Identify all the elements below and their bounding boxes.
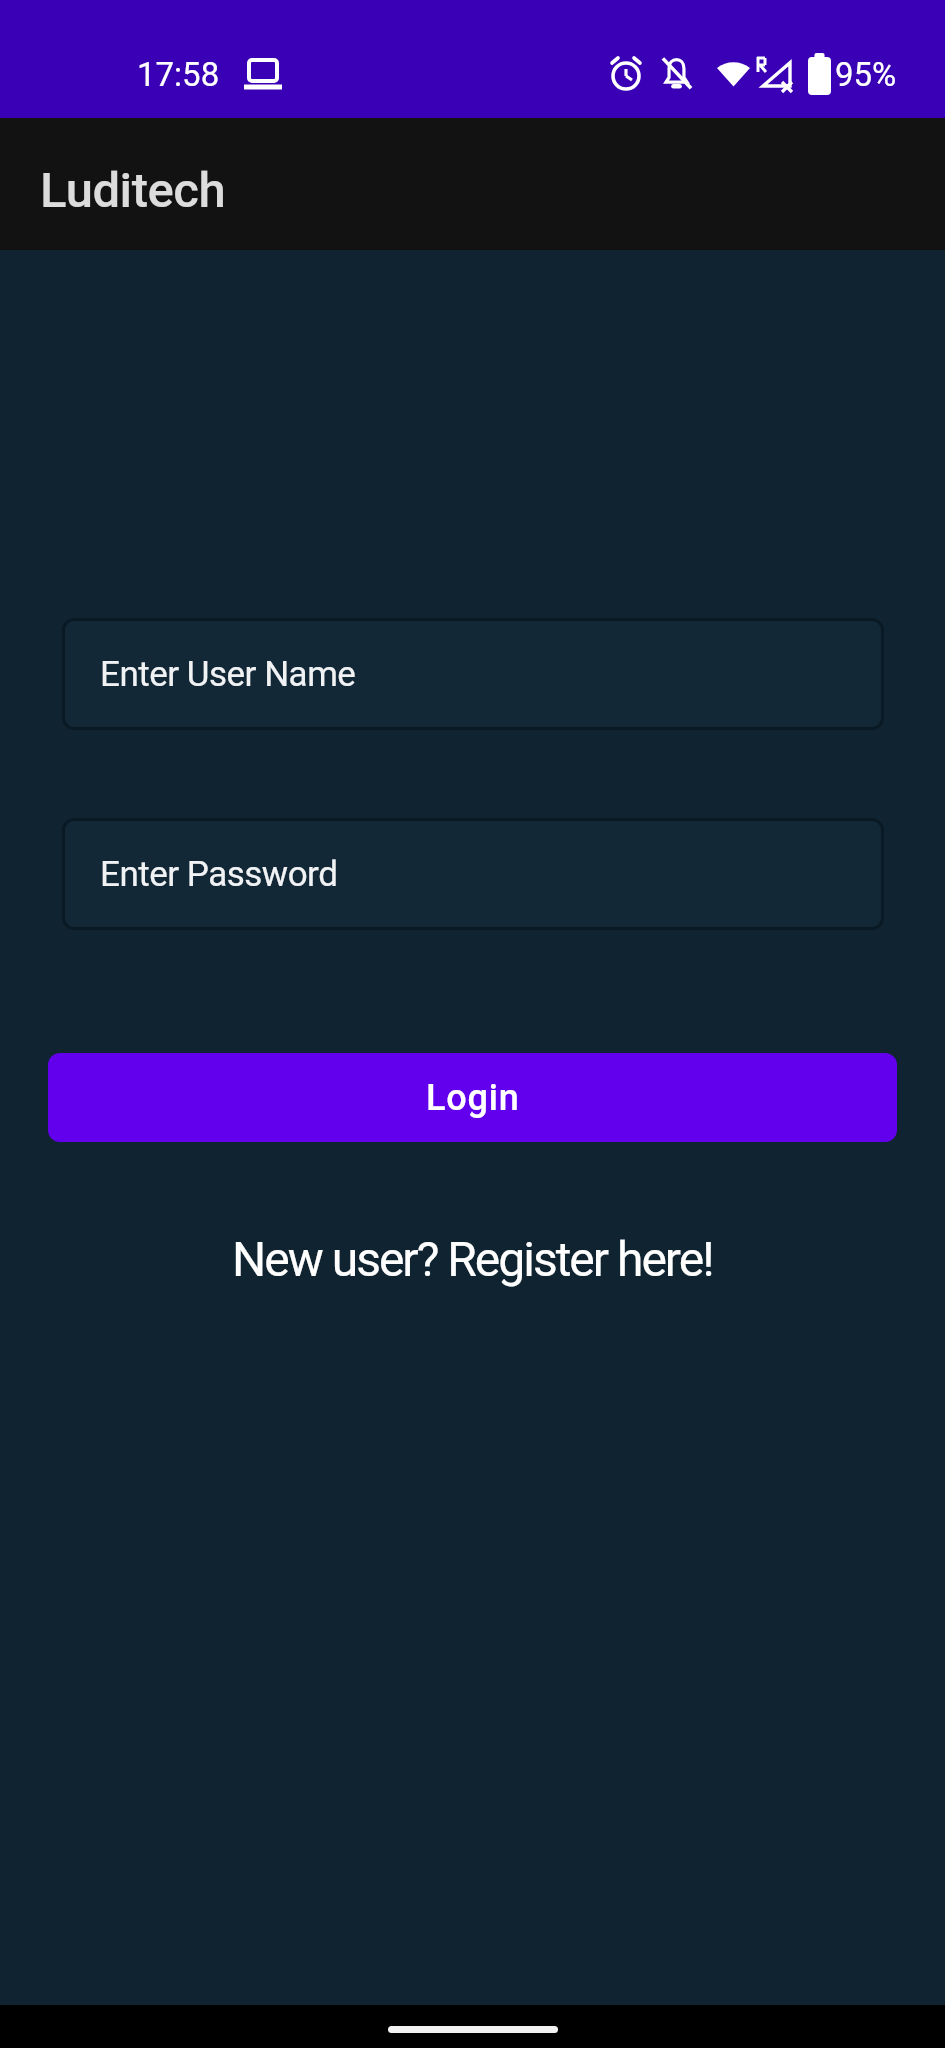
staticText: 17:58 bbox=[137, 55, 220, 94]
button[interactable]: Enter Password bbox=[62, 818, 884, 930]
staticText: Login bbox=[426, 1077, 520, 1119]
button[interactable]: Login bbox=[48, 1053, 897, 1142]
button[interactable]: Enter User Name bbox=[62, 618, 884, 730]
staticText: 95% bbox=[835, 55, 897, 94]
staticText: Luditech bbox=[40, 162, 226, 219]
button[interactable]: New user? Register here! bbox=[232, 1231, 713, 1287]
staticText: New user? Register here! bbox=[232, 1231, 713, 1287]
staticText: Enter Password bbox=[100, 854, 338, 895]
staticText: Enter User Name bbox=[100, 654, 356, 695]
